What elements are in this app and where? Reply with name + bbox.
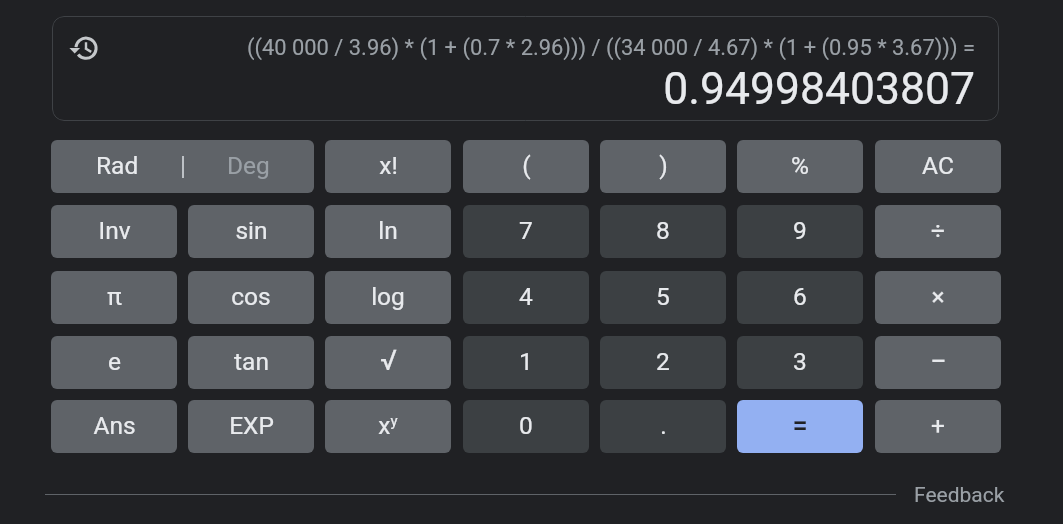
staticText: Ans (93, 411, 136, 440)
staticText: 0 (519, 411, 533, 440)
button[interactable]: x! (325, 140, 451, 193)
button[interactable]: tan (188, 336, 314, 389)
staticText: ) (659, 151, 668, 180)
staticText: × (931, 282, 945, 311)
button[interactable]: Deg (183, 140, 314, 193)
staticText: 7 (519, 216, 533, 245)
button[interactable]: xy (325, 400, 451, 453)
button[interactable]: Feedback (911, 482, 1007, 508)
staticText: AC (922, 151, 954, 180)
button[interactable]: ÷ (875, 205, 1001, 258)
button[interactable]: ) (600, 140, 726, 193)
button[interactable]: × (875, 271, 1001, 324)
staticText: − (930, 344, 947, 378)
button[interactable]: EXP (188, 400, 314, 453)
staticText: Rad (96, 151, 139, 180)
staticText: 1 (519, 347, 533, 376)
staticText: % (791, 151, 809, 180)
staticText: cos (231, 282, 271, 311)
button[interactable]: e (51, 336, 177, 389)
staticText: 4 (519, 282, 533, 311)
button[interactable]: 9 (737, 205, 863, 258)
staticText: Inv (98, 216, 131, 245)
staticText: 2 (656, 347, 670, 376)
button[interactable]: ( (463, 140, 589, 193)
button[interactable]: + (875, 400, 1001, 453)
button[interactable]: 3 (737, 336, 863, 389)
staticText: ÷ (931, 216, 945, 245)
button[interactable]: 1 (463, 336, 589, 389)
staticText: 8 (656, 216, 670, 245)
staticText: EXP (229, 411, 274, 440)
button[interactable]: 7 (463, 205, 589, 258)
button[interactable]: ln (325, 205, 451, 258)
staticText: + (931, 411, 945, 440)
staticText: Feedback (914, 483, 1005, 508)
staticText: x! (379, 151, 398, 180)
staticText: 6 (793, 282, 807, 311)
button[interactable]: cos (188, 271, 314, 324)
button[interactable]: π (51, 271, 177, 324)
staticText: 9 (793, 216, 807, 245)
staticText: e (108, 347, 121, 376)
button[interactable]: √ (325, 336, 451, 389)
button[interactable]: % (737, 140, 863, 193)
staticText: xy (378, 411, 398, 440)
staticText: = (792, 410, 808, 442)
staticText: ((40 000 / 3.96) * (1 + (0.7 * 2.96))) /… (246, 35, 975, 61)
button[interactable]: AC (875, 140, 1001, 193)
button[interactable]: 4 (463, 271, 589, 324)
button[interactable]: 6 (737, 271, 863, 324)
staticText: 3 (793, 347, 807, 376)
button[interactable]: log (325, 271, 451, 324)
button[interactable]: = (737, 400, 863, 453)
staticText: √ (380, 344, 397, 377)
staticText: log (371, 282, 405, 311)
button[interactable]: 2 (600, 336, 726, 389)
button[interactable]: 5 (600, 271, 726, 324)
staticText: tan (234, 347, 269, 376)
button[interactable]: 8 (600, 205, 726, 258)
staticText: π (107, 282, 122, 311)
staticText: sin (235, 216, 268, 245)
button[interactable]: 0 (463, 400, 589, 453)
staticText: ln (378, 216, 398, 245)
button[interactable]: − (875, 336, 1001, 389)
staticText: 5 (656, 282, 670, 311)
button[interactable]: Inv (51, 205, 177, 258)
button[interactable]: Ans (51, 400, 177, 453)
button[interactable]: History (64, 26, 108, 70)
staticText: ( (522, 151, 531, 180)
staticText: . (660, 411, 667, 440)
staticText: Deg (227, 151, 270, 180)
button[interactable]: . (600, 400, 726, 453)
button[interactable]: sin (188, 205, 314, 258)
staticText: 0.94998403807 (663, 63, 975, 115)
button[interactable]: Rad (51, 140, 183, 193)
